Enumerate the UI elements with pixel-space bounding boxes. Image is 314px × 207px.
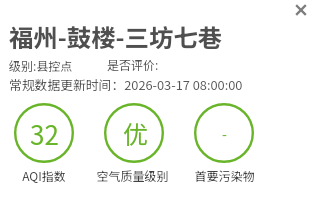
button[interactable]: 32 [14, 103, 74, 163]
staticText: AQI指数 [22, 167, 66, 184]
staticText: 是否评价: [107, 56, 159, 73]
staticText: 优 [123, 115, 149, 151]
staticText: 福州-鼓楼-三坊七巷 [9, 19, 223, 54]
staticText: 级别:县控点 [9, 57, 73, 74]
staticText: 常规数据更新时间：2026-03-17 08:00:00 [9, 75, 243, 94]
staticText: 首要污染物 [194, 167, 255, 184]
button[interactable]: 优 [104, 103, 164, 163]
button[interactable]: - [194, 103, 254, 163]
staticText: 32 [30, 115, 59, 153]
button[interactable]: Close [289, 0, 313, 20]
staticText: - [222, 124, 227, 144]
staticText: 空气质量级别 [96, 167, 169, 184]
